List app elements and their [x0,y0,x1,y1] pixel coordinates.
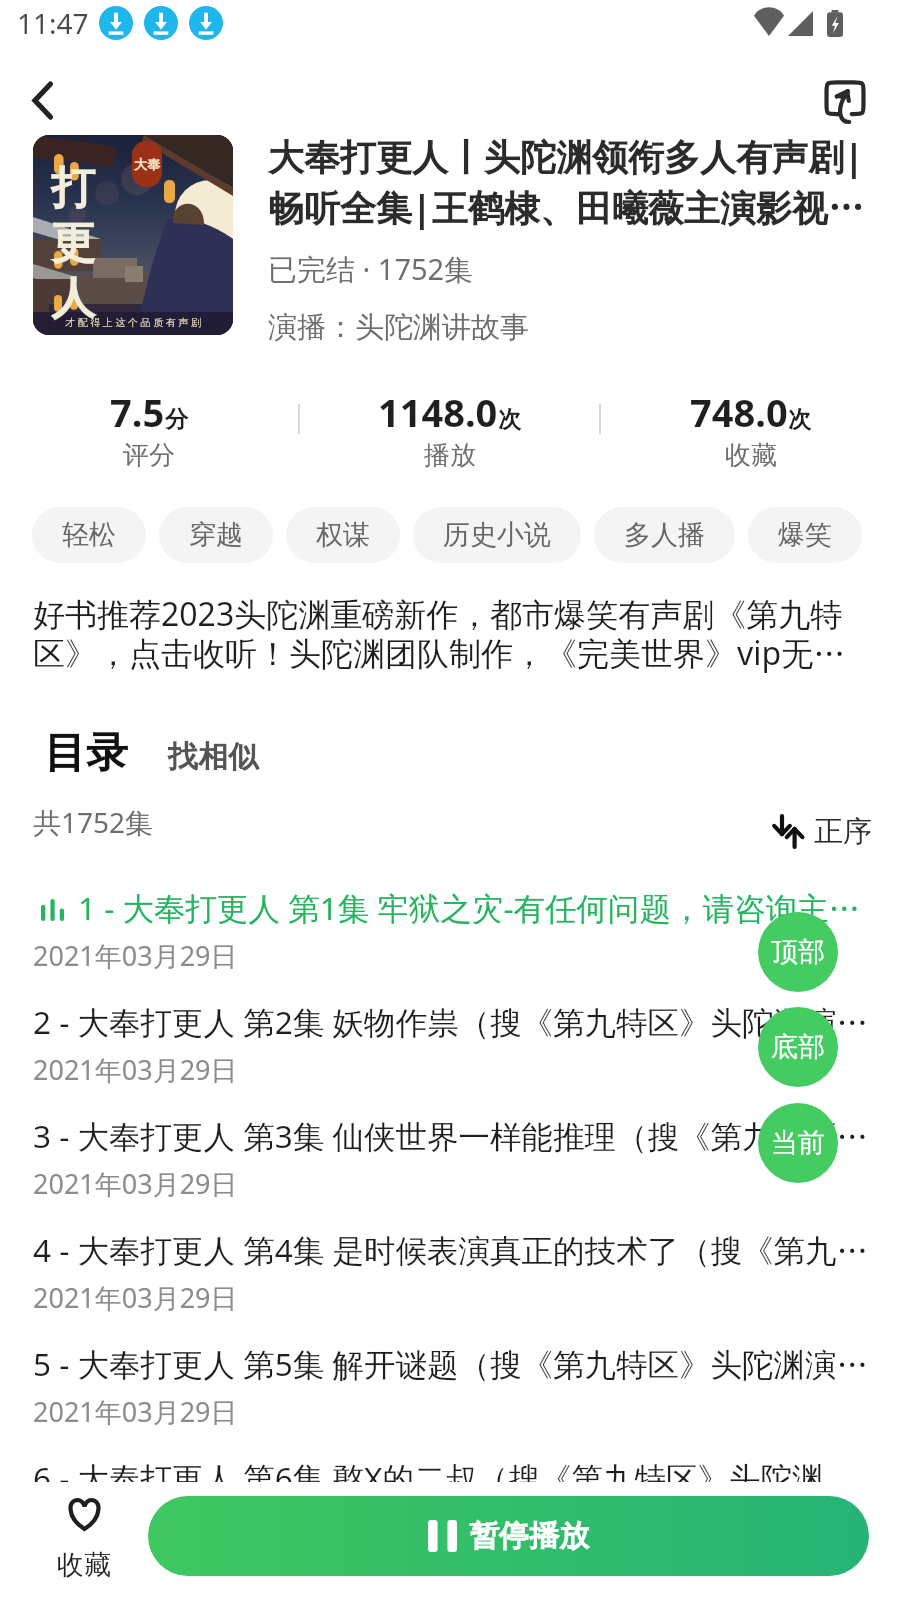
staticText: 次 [498,405,521,434]
button[interactable]: 目录 [44,727,128,780]
staticText: 1148.0 [378,386,498,438]
staticText: 2 - 大奉打更人 第2集 妖物作祟（搜《第九特区》头陀渊演播） [33,1000,872,1043]
button[interactable]: 顶部 [758,912,838,992]
staticText: 收藏 [725,439,777,472]
staticText: 好书推荐2023头陀渊重磅新作，都市爆笑有声剧《第九特区》，点击收听！头陀渊团队… [33,592,868,675]
staticText: 底部 [771,1030,825,1064]
staticText: 已完结 · 1752集 [268,249,474,289]
button[interactable]: 穿越 [159,507,273,563]
button[interactable]: 找相似 [168,738,258,776]
button[interactable]: 收藏 [47,1496,121,1583]
button[interactable]: 权谋 [286,507,400,563]
staticText: 3 - 大奉打更人 第3集 仙侠世界一样能推理（搜《第九特区》头陀渊） [33,1114,872,1157]
staticText: 2021年03月29日 [33,1165,238,1202]
button[interactable]: Back [12,70,72,130]
staticText: 大奉 [134,156,160,172]
button[interactable]: 底部 [758,1007,838,1087]
staticText: 历史小说 [443,518,551,552]
button[interactable]: 多人播 [594,507,735,563]
staticText: 1 - 大奉打更人 第1集 牢狱之灾-有任何问题，请咨询主页微信 [78,886,872,929]
button[interactable]: 6 - 大奉打更人 第6集 憨X的二叔（搜《第九特区》头陀渊 [0,1456,900,1570]
staticText: 5 - 大奉打更人 第5集 解开谜题（搜《第九特区》头陀渊演播） [33,1342,872,1385]
staticText: 2021年03月29日 [33,1393,238,1430]
button[interactable]: 2 - 大奉打更人 第2集 妖物作祟（搜《第九特区》头陀渊演播） [0,1000,900,1114]
staticText: 4 - 大奉打更人 第4集 是时候表演真正的技术了（搜《第九特区》） [33,1228,872,1271]
button[interactable]: 历史小说 [413,507,581,563]
button[interactable]: 正序 [773,813,872,850]
button[interactable]: 4 - 大奉打更人 第4集 是时候表演真正的技术了（搜《第九特区》） [0,1228,900,1342]
staticText: 分 [165,405,188,434]
staticText: 人 [51,271,95,326]
staticText: 2021年03月29日 [33,1051,238,1088]
staticText: 评分 [123,439,175,472]
button[interactable]: 暂停播放 [148,1496,869,1576]
staticText: 当前 [771,1126,825,1160]
staticText: 才 配 得 上 这 个 品 质 有 声 剧 [65,315,201,329]
staticText: 7.5 [110,386,165,438]
button[interactable]: 1 - 大奉打更人 第1集 牢狱之灾-有任何问题，请咨询主页微信 [0,886,900,1000]
staticText: 穿越 [189,518,243,552]
staticText: 播放 [424,439,476,472]
staticText: 更 [51,216,95,271]
button[interactable]: 好书推荐2023头陀渊重磅新作，都市爆笑有声剧《第九特区》，点击收听！头陀渊团队… [33,592,868,675]
staticText: 2021年03月29日 [33,1279,238,1316]
staticText: 轻松 [62,518,116,552]
button[interactable]: 轻松 [32,507,146,563]
staticText: 次 [788,405,811,434]
staticText: 权谋 [316,518,370,552]
staticText: 暂停播放 [469,1517,589,1555]
button[interactable]: 爆笑 [748,507,862,563]
staticText: 演播：头陀渊讲故事 [268,309,529,346]
staticText: 748.0 [690,386,788,438]
staticText: 收藏 [57,1548,111,1582]
button[interactable]: Share [815,70,875,130]
staticText: 大奉打更人丨头陀渊领衔多人有声剧|畅听全集|王鹤棣、田曦薇主演影视剧原著 [268,132,866,231]
button[interactable]: 打 [33,135,233,335]
staticText: 11:47 [17,4,89,42]
staticText: 顶部 [771,935,825,969]
button[interactable]: 3 - 大奉打更人 第3集 仙侠世界一样能推理（搜《第九特区》头陀渊） [0,1114,900,1228]
button[interactable]: 当前 [758,1103,838,1183]
staticText: 目录 [44,727,128,780]
staticText: 找相似 [168,738,258,776]
staticText: 2021年03月29日 [33,1507,238,1544]
staticText: 共1752集 [33,803,154,841]
staticText: 多人播 [624,518,705,552]
staticText: 6 - 大奉打更人 第6集 憨X的二叔（搜《第九特区》头陀渊 [33,1456,824,1499]
staticText: 爆笑 [778,518,832,552]
staticText: 2021年03月29日 [33,937,238,974]
button[interactable]: 5 - 大奉打更人 第5集 解开谜题（搜《第九特区》头陀渊演播） [0,1342,900,1456]
staticText: 打 [51,161,95,216]
staticText: 正序 [814,813,872,850]
